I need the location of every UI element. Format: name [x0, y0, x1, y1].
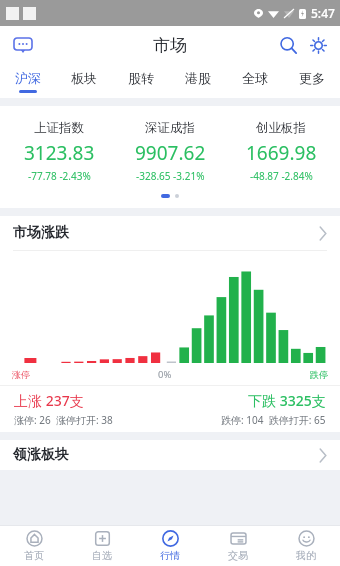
button[interactable]: 首页 — [0, 525, 68, 566]
button[interactable]: 自选 — [68, 525, 136, 566]
staticText: 创业板指 — [256, 120, 306, 136]
staticText: -77.78 -2.43% — [28, 169, 91, 183]
staticText: 跌停 — [310, 369, 328, 380]
button[interactable]: 交易 — [204, 525, 272, 566]
staticText: 3123.83 — [24, 140, 95, 166]
staticText: 沪深 — [15, 70, 41, 86]
staticText: 首页 — [24, 549, 44, 562]
staticText: 深证成指 — [145, 120, 195, 136]
staticText: 5:47 — [311, 5, 335, 21]
button[interactable]: 行情 — [136, 525, 204, 566]
button[interactable]: 沪深 — [0, 64, 56, 98]
button[interactable]: 更多 — [283, 64, 340, 98]
button[interactable]: 股转 — [112, 64, 169, 98]
staticText: 下跌 3325支 — [248, 391, 326, 410]
staticText: 上涨 237支 — [14, 391, 84, 410]
staticText: 跌停: 104 跌停打开: 65 — [221, 413, 326, 427]
staticText: 我的 — [296, 549, 316, 562]
button[interactable]: Brightness — [304, 31, 332, 59]
button[interactable]: 港股 — [169, 64, 226, 98]
staticText: 行情 — [160, 549, 180, 562]
staticText: 港股 — [185, 70, 211, 86]
staticText: -48.87 -2.84% — [250, 169, 313, 183]
staticText: 交易 — [228, 549, 248, 562]
staticText: 涨停: 26 涨停打开: 38 — [14, 413, 113, 427]
staticText: 自选 — [92, 549, 112, 562]
button[interactable]: Search — [274, 31, 302, 59]
staticText: 更多 — [299, 70, 325, 86]
staticText: 涨停 — [12, 369, 30, 380]
staticText: 股转 — [128, 70, 154, 86]
staticText: 1669.98 — [246, 140, 317, 166]
staticText: 板块 — [71, 70, 97, 86]
staticText: 9907.62 — [135, 140, 206, 166]
button[interactable]: 市场涨跌 — [0, 216, 340, 250]
button[interactable]: 全球 — [226, 64, 283, 98]
button[interactable]: 上证指数 — [0, 106, 340, 208]
staticText: 全球 — [242, 70, 268, 86]
button[interactable]: Messages — [8, 30, 38, 60]
staticText: 0% — [158, 368, 172, 381]
button[interactable]: 板块 — [56, 64, 112, 98]
staticText: -328.65 -3.21% — [136, 169, 205, 183]
staticText: 领涨板块 — [13, 446, 69, 464]
button[interactable]: 领涨板块 — [0, 440, 340, 470]
staticText: 市场涨跌 — [13, 224, 69, 242]
staticText: 上证指数 — [34, 120, 84, 136]
button[interactable]: 我的 — [272, 525, 340, 566]
staticText: 市场 — [153, 35, 187, 56]
